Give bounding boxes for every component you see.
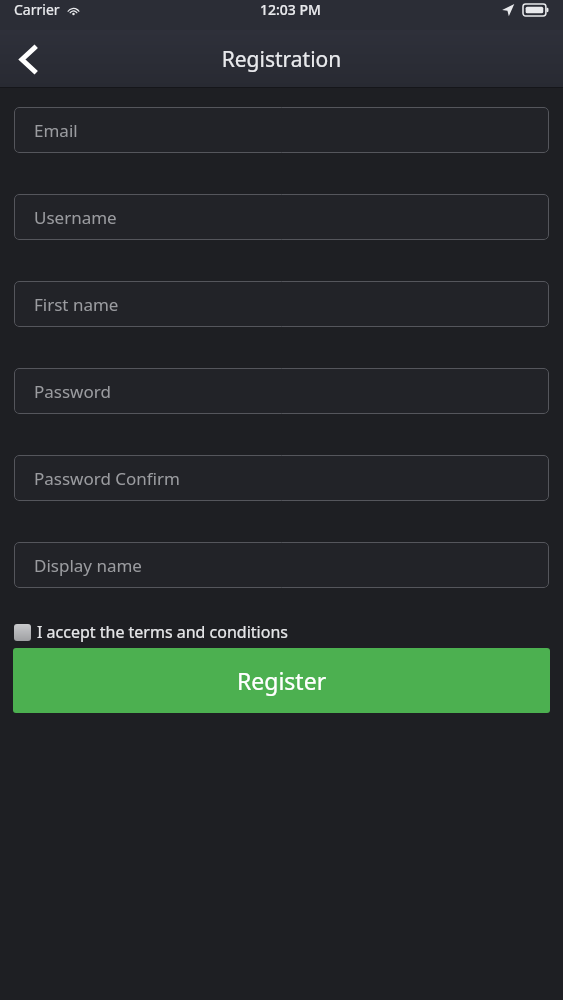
- button[interactable]: Back: [0, 31, 56, 87]
- staticText: Register: [237, 665, 327, 696]
- staticText: Password Confirm: [34, 467, 180, 490]
- button[interactable]: Accept terms checkbox: [14, 621, 549, 643]
- button[interactable]: Display name: [14, 542, 549, 588]
- button[interactable]: Email: [14, 107, 549, 153]
- button[interactable]: First name: [14, 281, 549, 327]
- staticText: First name: [34, 293, 119, 316]
- button[interactable]: Password Confirm: [14, 455, 549, 501]
- other: Accept terms checkbox: [14, 624, 31, 641]
- button[interactable]: Register: [13, 648, 550, 713]
- staticText: I accept the terms and conditions: [37, 621, 288, 643]
- staticText: Registration: [0, 45, 563, 74]
- staticText: Password: [34, 380, 111, 403]
- staticText: Carrier: [14, 0, 60, 19]
- button[interactable]: Password: [14, 368, 549, 414]
- staticText: Username: [34, 206, 117, 229]
- staticText: Email: [34, 119, 78, 142]
- staticText: 12:03 PM: [260, 0, 321, 19]
- staticText: Display name: [34, 554, 142, 577]
- button[interactable]: Username: [14, 194, 549, 240]
